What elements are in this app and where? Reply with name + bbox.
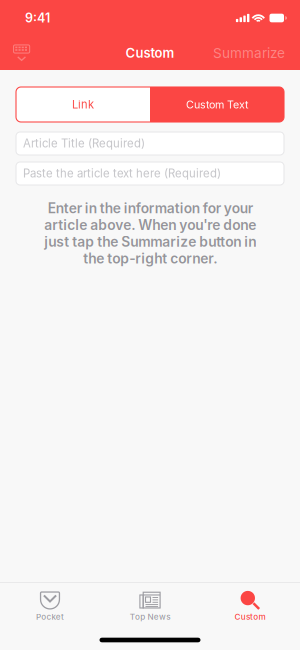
staticText: Article Title (Required): [23, 137, 145, 150]
button[interactable]: Top News: [100, 583, 200, 630]
button[interactable]: Custom: [200, 583, 300, 630]
staticText: Custom: [125, 45, 174, 61]
button[interactable]: Custom Text: [150, 87, 284, 122]
staticText: Pocket: [36, 612, 64, 622]
staticText: Custom: [234, 612, 265, 622]
staticText: Enter in the information for your articl…: [44, 200, 256, 267]
staticText: Paste the article text here (Required): [23, 167, 221, 180]
staticText: Link: [72, 98, 94, 111]
button[interactable]: Summarize: [206, 39, 292, 67]
staticText: Summarize: [213, 45, 285, 61]
staticText: 9:41: [25, 10, 50, 26]
button[interactable]: Hide keyboard: [8, 38, 35, 68]
button[interactable]: Pocket: [0, 583, 100, 630]
button[interactable]: Link: [16, 87, 150, 122]
staticText: Top News: [130, 612, 170, 622]
staticText: Custom Text: [186, 98, 248, 111]
